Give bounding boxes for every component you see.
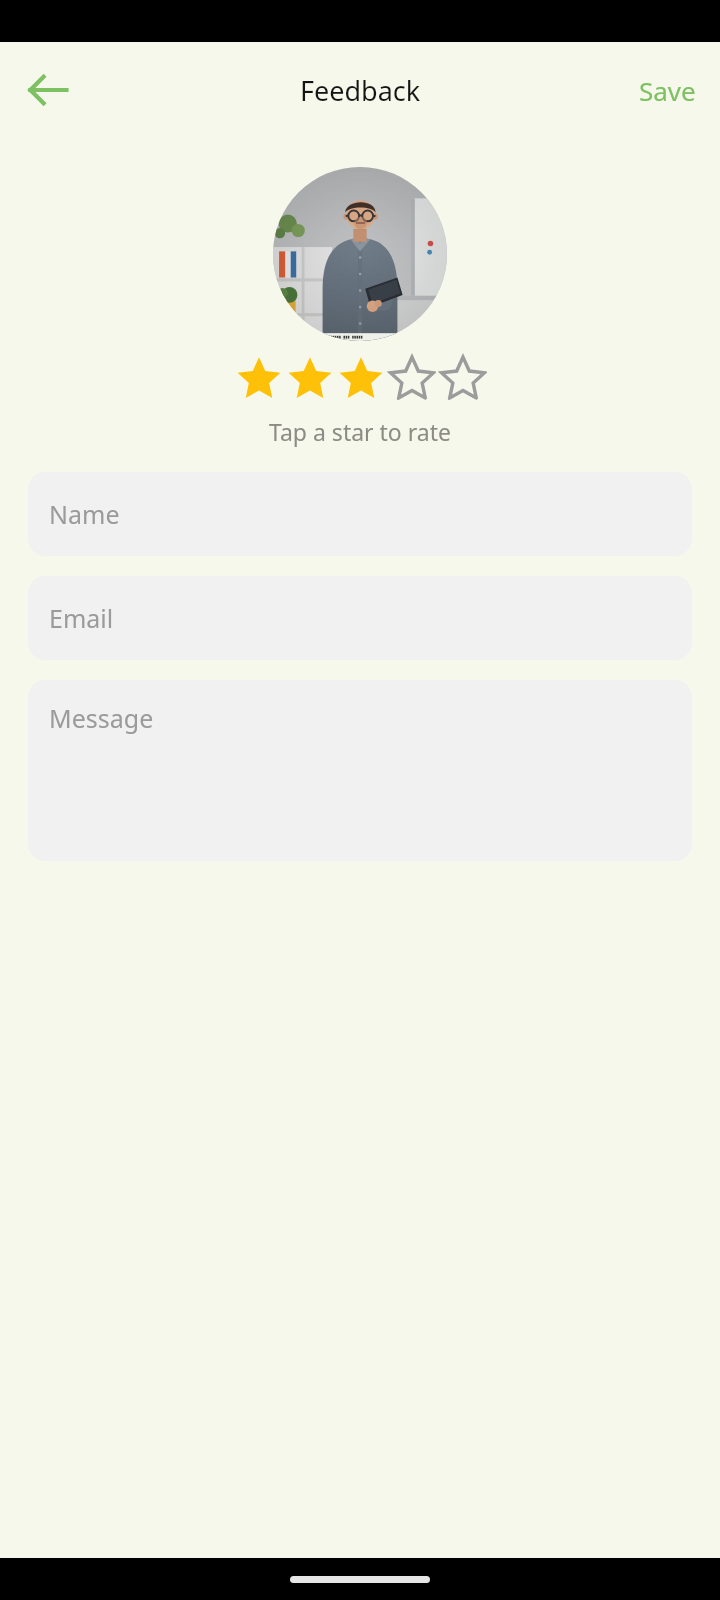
button[interactable]: Save xyxy=(621,61,714,120)
button[interactable]: Back xyxy=(14,56,82,124)
button[interactable]: Rate 1 star xyxy=(233,353,284,404)
button[interactable]: Rate 3 star xyxy=(335,353,386,404)
button[interactable]: Message xyxy=(28,680,692,861)
button[interactable]: Email xyxy=(28,576,692,660)
staticText: Email xyxy=(49,601,114,635)
button[interactable]: Rate 2 star xyxy=(284,353,335,404)
staticText: Name xyxy=(49,497,120,531)
staticText: Save xyxy=(639,73,696,108)
staticText: Tap a star to rate xyxy=(269,416,451,447)
staticText: Message xyxy=(49,701,154,735)
button[interactable]: Rate 4 star xyxy=(386,353,437,404)
button[interactable]: Profile photo xyxy=(273,167,447,341)
staticText: Feedback xyxy=(300,72,421,109)
button[interactable]: Name xyxy=(28,472,692,556)
button[interactable]: Rate 5 star xyxy=(437,353,488,404)
